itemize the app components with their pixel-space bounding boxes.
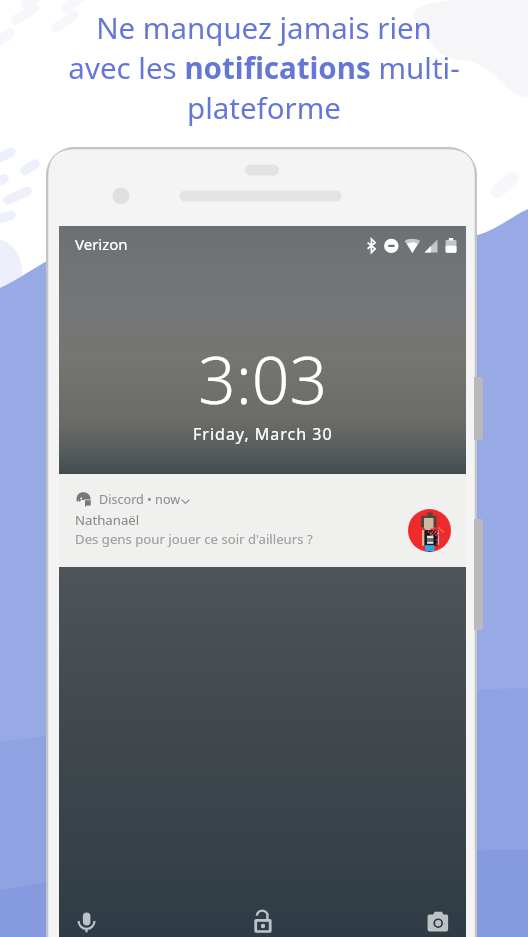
staticText: Nathanaël [75, 511, 140, 529]
button[interactable]: Unlock [251, 908, 277, 934]
staticText: plateforme [187, 87, 341, 127]
staticText: Friday, March 30 [193, 423, 333, 445]
staticText: Verizon [75, 234, 128, 254]
staticText: Ne manquez jamais rien [96, 7, 432, 47]
button[interactable]: Voice assistant [74, 908, 99, 933]
staticText: avec les notifications multi- [68, 47, 460, 87]
button[interactable]: Discord • now [59, 474, 466, 567]
staticText: Des gens pour jouer ce soir d'ailleurs ? [75, 530, 313, 548]
staticText: Discord • now [99, 491, 181, 508]
button[interactable]: Camera [425, 908, 451, 934]
staticText: 3:03 [198, 333, 328, 423]
